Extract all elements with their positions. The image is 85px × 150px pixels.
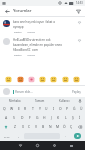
button[interactable]: S <box>10 113 18 122</box>
staticText: B <box>42 124 45 129</box>
button[interactable]: V <box>33 122 40 131</box>
staticText: Ç <box>70 124 73 129</box>
staticText: U <box>45 106 48 111</box>
button[interactable]: C <box>26 122 33 131</box>
button[interactable]: kara one hoş eski oyun fakat a <box>0 17 85 35</box>
button[interactable]: K <box>55 113 62 122</box>
button[interactable]: Tamam <box>27 97 52 104</box>
button[interactable]: Home <box>29 141 46 150</box>
button[interactable]: Emoji reaction <box>61 75 70 84</box>
staticText: Beğen <box>14 30 22 33</box>
button[interactable]: Merhaba <box>2 97 27 104</box>
button[interactable]: F <box>26 113 34 122</box>
button[interactable]: Emoji reaction <box>49 75 58 84</box>
button[interactable]: B <box>40 122 47 131</box>
staticText: X <box>22 124 24 129</box>
staticText: ?123 <box>4 135 10 138</box>
staticText: , <box>18 134 19 138</box>
staticText: İ <box>79 115 81 120</box>
staticText: W <box>10 106 14 111</box>
staticText: R <box>24 106 27 111</box>
button[interactable]: Beğen <box>13 53 23 56</box>
button[interactable]: Like <box>77 38 82 43</box>
button[interactable]: Kullanıcı <box>52 97 77 104</box>
staticText: oynayıp <box>13 25 24 29</box>
button[interactable]: Ş <box>69 113 76 122</box>
button[interactable]: Emoji reaction <box>16 75 25 84</box>
button[interactable]: M <box>54 122 61 131</box>
button[interactable]: Sort comments <box>74 7 82 15</box>
staticText: M <box>56 124 60 129</box>
staticText: Beğen <box>14 53 22 56</box>
staticText: C <box>28 124 31 129</box>
staticText: E <box>18 106 20 111</box>
staticText: O <box>59 106 62 111</box>
button[interactable]: Shift <box>0 122 11 131</box>
button[interactable]: Back <box>12 141 29 150</box>
staticText: Y <box>39 106 41 111</box>
button[interactable]: HeELzaMSDsrutrestt en cok <box>0 35 85 58</box>
button[interactable]: Emoji reaction <box>27 75 36 84</box>
staticText: H <box>43 115 46 120</box>
button[interactable]: Keyboard switcher <box>63 141 80 150</box>
button[interactable]: X <box>19 122 26 131</box>
button[interactable]: Ç <box>68 122 75 131</box>
staticText: Yorum ekle... <box>15 90 33 94</box>
button[interactable]: Ğ <box>71 104 78 113</box>
button[interactable]: Emoji reaction <box>72 75 81 84</box>
button[interactable]: Ü <box>78 104 85 113</box>
staticText: A <box>5 115 8 120</box>
staticText: Z <box>14 124 16 129</box>
staticText: Ö <box>63 124 66 129</box>
button[interactable]: Back <box>3 7 11 15</box>
staticText: N <box>49 124 52 129</box>
button[interactable]: E <box>15 104 22 113</box>
staticText: D <box>21 115 24 120</box>
button[interactable]: Comma <box>14 132 23 140</box>
staticText: . <box>65 134 66 138</box>
button[interactable]: D <box>18 113 26 122</box>
button[interactable]: Voice input <box>77 97 83 104</box>
button[interactable]: U <box>43 104 50 113</box>
button[interactable]: P <box>64 104 71 113</box>
button[interactable]: Yanıtla <box>26 30 36 33</box>
button[interactable]: Beğen <box>13 30 23 33</box>
button[interactable]: Paylaş <box>71 89 82 95</box>
staticText: K <box>57 115 60 120</box>
staticText: L <box>65 115 67 120</box>
button[interactable]: Emoji reaction <box>4 75 13 84</box>
button[interactable]: ?123 <box>0 132 14 140</box>
staticText: Ş <box>72 115 74 120</box>
staticText: Yanıtla <box>27 30 35 33</box>
button[interactable]: Q <box>0 104 8 113</box>
button[interactable]: W <box>8 104 15 113</box>
button[interactable]: A <box>2 113 10 122</box>
staticText: T <box>32 106 34 111</box>
button[interactable]: H <box>41 113 48 122</box>
button[interactable]: İ <box>76 113 83 122</box>
button[interactable]: Yanıtla <box>26 53 36 56</box>
button[interactable]: Recent apps <box>46 141 63 150</box>
button[interactable]: Send <box>74 133 81 139</box>
staticText: Paylaş <box>72 90 81 94</box>
button[interactable]: T <box>29 104 36 113</box>
button[interactable]: L <box>62 113 69 122</box>
button[interactable]: R <box>22 104 29 113</box>
button[interactable]: Y <box>36 104 43 113</box>
button[interactable]: N <box>47 122 54 131</box>
button[interactable]: Ö <box>61 122 68 131</box>
button[interactable]: Backspace <box>75 122 85 131</box>
button[interactable]: Like <box>77 20 82 25</box>
staticText: Yorumlar <box>13 8 74 14</box>
button[interactable]: G <box>34 113 41 122</box>
button[interactable]: I <box>50 104 57 113</box>
staticText: J <box>51 115 52 120</box>
button[interactable]: J <box>48 113 55 122</box>
button[interactable]: Z <box>11 122 19 131</box>
button[interactable]: O <box>57 104 64 113</box>
staticText: HeELzaMSDsrutrestt en cok <box>13 38 51 42</box>
staticText: F <box>29 115 31 120</box>
button[interactable]: Emoji reaction <box>38 75 47 84</box>
